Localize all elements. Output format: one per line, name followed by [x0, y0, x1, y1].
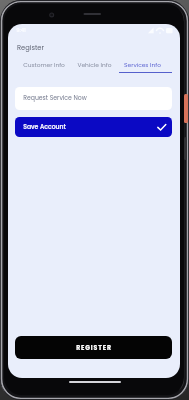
- staticText: 9:41: [16, 27, 26, 34]
- other: Saved: [157, 124, 167, 131]
- staticText: Save Account: [23, 123, 66, 132]
- staticText: REGISTER: [76, 343, 112, 352]
- staticText: Request Service Now: [23, 94, 87, 103]
- button[interactable]: Customer Info: [18, 61, 70, 73]
- staticText: Register: [17, 43, 44, 52]
- staticText: Vehicle Info: [77, 61, 112, 69]
- button[interactable]: Save Account: [15, 117, 172, 137]
- button[interactable]: Vehicle Info: [72, 61, 117, 73]
- button[interactable]: REGISTER: [15, 336, 172, 359]
- button[interactable]: Services Info: [119, 61, 166, 73]
- button[interactable]: Request Service Now: [15, 87, 172, 110]
- staticText: Services Info: [124, 61, 161, 69]
- staticText: Customer Info: [23, 61, 65, 69]
